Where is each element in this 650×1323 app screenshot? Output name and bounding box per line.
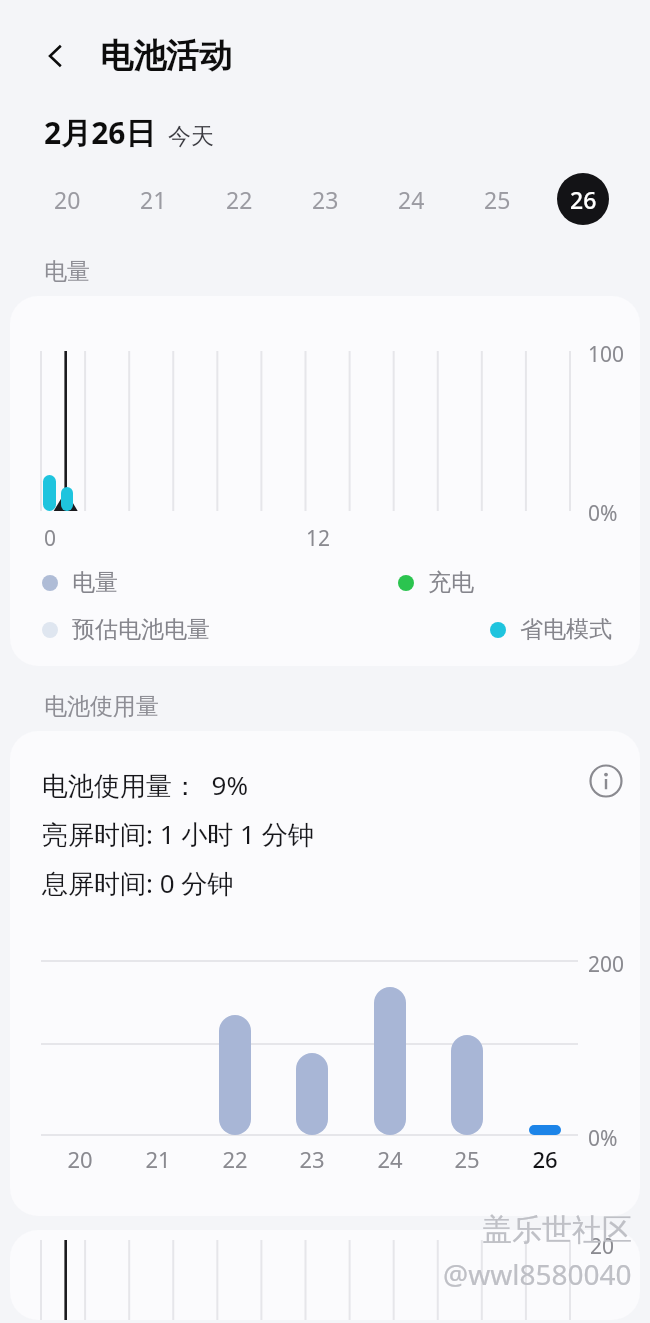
staticText: 21 [140,184,167,215]
staticText: 20 [58,1144,102,1174]
button[interactable]: 20 [10,1230,640,1320]
staticText: 盖乐世社区 [482,1211,632,1249]
staticText: 充电 [428,568,474,597]
button[interactable]: 22 [213,173,265,225]
staticText: 电量 [72,568,118,597]
button[interactable]: 20 [41,173,93,225]
button[interactable]: 预估电池电量 [42,615,210,644]
staticText: 20 [590,1232,615,1261]
staticText: 0% [588,1124,618,1153]
staticText: 电池活动 [100,35,232,77]
button[interactable]: 100 [10,296,640,666]
button[interactable]: 24 [385,173,437,225]
staticText: 21 [136,1144,180,1174]
staticText: 预估电池电量 [72,615,210,644]
button[interactable]: 充电 [398,568,474,597]
staticText: 25 [484,184,511,215]
staticText: 24 [368,1144,412,1174]
staticText: 26 [523,1144,567,1174]
staticText: 电池使用量 [44,692,159,721]
staticText: 0 [44,524,57,553]
button[interactable]: 26 [557,173,609,225]
staticText: 亮屏时间: 1 小时 1 分钟 [42,816,314,852]
staticText: 0% [588,499,618,528]
staticText: 息屏时间: 0 分钟 [42,865,234,901]
button[interactable]: Info [582,757,630,805]
staticText: 24 [398,184,425,215]
staticText: 200 [588,950,625,979]
button[interactable]: 21 [127,173,179,225]
staticText: 电池使用量： 9% [42,767,248,803]
staticText: 12 [306,524,331,553]
staticText: 25 [445,1144,489,1174]
staticText: 电量 [44,257,90,286]
staticText: 26 [570,184,597,215]
button[interactable]: Back [30,30,82,82]
button[interactable]: 电量 [42,568,118,597]
staticText: 2月26日 [44,112,156,153]
staticText: 省电模式 [520,615,612,644]
button[interactable]: 省电模式 [490,615,612,644]
staticText: 23 [290,1144,334,1174]
staticText: 22 [226,184,253,215]
staticText: 100 [588,340,625,369]
staticText: 今天 [168,122,214,151]
button[interactable]: 25 [471,173,523,225]
staticText: 20 [54,184,81,215]
staticText: 23 [312,184,339,215]
staticText: 22 [213,1144,257,1174]
button[interactable]: 23 [299,173,351,225]
button[interactable]: 电池使用量： 9% [10,731,640,1216]
staticText: @wwl8580040 [443,1255,632,1293]
